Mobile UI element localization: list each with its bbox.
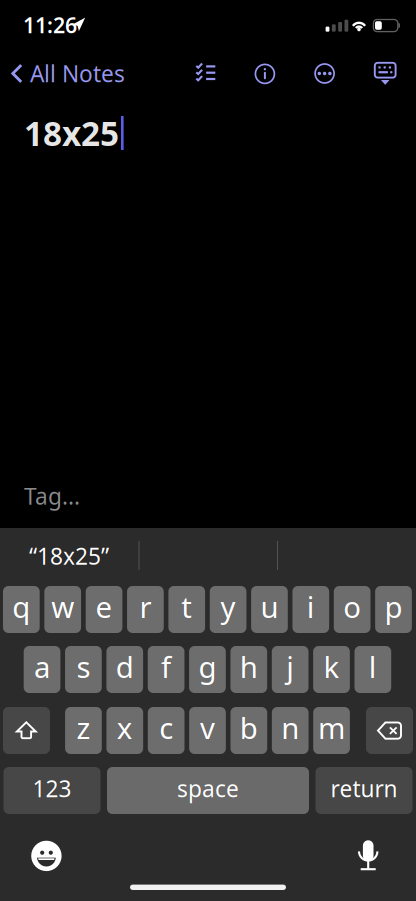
button[interactable]: More	[303, 52, 347, 96]
staticText: q	[12, 587, 30, 626]
button[interactable]: Hide Keyboard	[363, 51, 407, 95]
staticText: space	[177, 773, 239, 803]
staticText: t	[181, 587, 192, 626]
staticText: l	[369, 647, 377, 686]
button[interactable]: u	[251, 586, 288, 633]
staticText: k	[323, 647, 339, 686]
staticText: d	[116, 647, 134, 686]
button[interactable]: s	[65, 646, 102, 693]
staticText: j	[286, 647, 294, 686]
staticText: y	[221, 587, 236, 626]
staticText: a	[34, 647, 50, 686]
button[interactable]: Dictation	[341, 829, 395, 881]
button[interactable]: p	[375, 586, 412, 633]
staticText: i	[307, 587, 315, 626]
button[interactable]: d	[106, 646, 143, 693]
button[interactable]: b	[230, 707, 267, 754]
staticText: h	[240, 647, 258, 686]
staticText: m	[318, 708, 345, 747]
staticText: p	[384, 587, 402, 626]
button[interactable]: space	[107, 767, 309, 814]
staticText: All Notes	[30, 58, 125, 88]
staticText: w	[51, 587, 74, 626]
button[interactable]: w	[44, 586, 81, 633]
button[interactable]: y	[210, 586, 246, 633]
button[interactable]: m	[313, 707, 350, 754]
staticText: u	[260, 587, 278, 626]
button[interactable]: g	[189, 646, 226, 693]
staticText: o	[343, 587, 361, 626]
staticText: n	[281, 708, 299, 747]
button[interactable]: e	[86, 586, 122, 633]
staticText: x	[117, 708, 133, 747]
button[interactable]: o	[334, 586, 370, 633]
staticText: r	[139, 587, 151, 626]
button[interactable]: h	[230, 646, 267, 693]
button[interactable]: x	[106, 707, 143, 754]
button[interactable]: Delete	[366, 707, 413, 754]
button[interactable]: Checklist	[184, 48, 228, 92]
button[interactable]: k	[313, 646, 350, 693]
button[interactable]: i	[292, 586, 329, 633]
button[interactable]: c	[148, 707, 184, 754]
button[interactable]: Shift	[3, 707, 50, 754]
staticText: g	[198, 647, 216, 686]
staticText: v	[200, 708, 215, 747]
button[interactable]: Emoji	[20, 830, 74, 882]
staticText: 11:26	[23, 11, 77, 39]
button[interactable]: v	[189, 707, 226, 754]
staticText: return	[330, 773, 397, 803]
staticText: s	[76, 647, 90, 686]
button[interactable]: j	[272, 646, 308, 693]
button[interactable]: 123	[3, 767, 100, 814]
staticText: f	[161, 647, 171, 686]
button[interactable]: n	[272, 707, 309, 754]
staticText: e	[96, 587, 113, 626]
staticText: 123	[32, 773, 71, 803]
staticText: z	[76, 708, 90, 747]
button[interactable]: return	[315, 767, 412, 814]
button[interactable]: “18x25”	[0, 528, 138, 578]
button[interactable]: l	[354, 646, 391, 693]
staticText: Tag...	[24, 481, 80, 511]
staticText: “18x25”	[29, 541, 109, 571]
button[interactable]: Note details	[243, 52, 287, 96]
button[interactable]: t	[168, 586, 205, 633]
staticText: b	[240, 708, 258, 747]
button[interactable]: f	[148, 646, 184, 693]
staticText: 18x25	[24, 111, 119, 155]
button[interactable]: All Notes	[11, 51, 151, 95]
button[interactable]: a	[24, 646, 60, 693]
button[interactable]: z	[65, 707, 102, 754]
button[interactable]: q	[3, 586, 40, 633]
staticText: c	[159, 708, 173, 747]
button[interactable]: r	[127, 586, 164, 633]
